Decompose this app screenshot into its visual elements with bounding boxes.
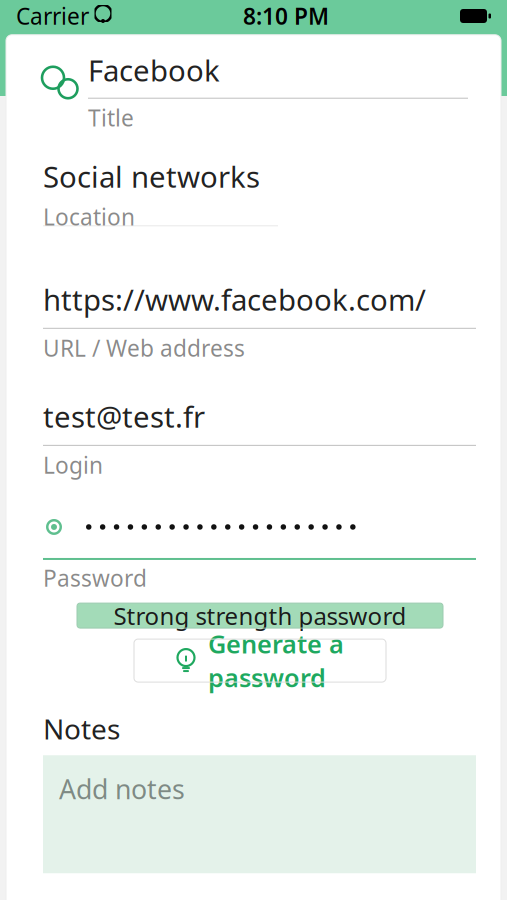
staticText: Facebook <box>88 51 220 90</box>
button[interactable]: Generate a password <box>134 639 386 682</box>
staticText: Title <box>88 103 134 133</box>
button[interactable]: Save <box>451 32 507 96</box>
staticText: URL / Web address <box>43 333 245 363</box>
staticText: Login <box>43 450 103 480</box>
staticText: Notes <box>43 710 120 747</box>
button[interactable]: Back <box>0 32 56 96</box>
staticText: https://www.facebook.com/ <box>43 280 426 319</box>
staticText: test@test.fr <box>43 397 205 436</box>
staticText: Carrier <box>16 1 89 31</box>
staticText: 8:10 PM <box>243 1 329 31</box>
staticText: Social networks <box>43 157 260 196</box>
staticText: Password <box>43 563 147 593</box>
button[interactable]: Show password <box>32 510 76 544</box>
staticText: Generate a password <box>208 627 344 694</box>
staticText: Location <box>43 202 135 232</box>
staticText: Modify <box>197 42 309 86</box>
staticText: Add notes <box>59 771 185 807</box>
button[interactable]: Add notes <box>43 755 476 873</box>
staticText: Strong strength password <box>113 600 406 631</box>
